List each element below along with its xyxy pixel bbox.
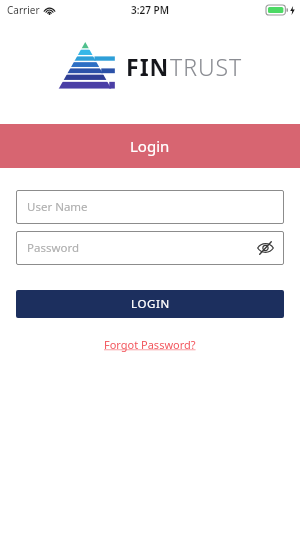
staticText: LOGIN [131,296,170,312]
button[interactable]: Password [16,231,284,265]
staticText: Login [130,136,170,156]
staticText: 3:27 PM [131,3,169,17]
button[interactable]: User Name [16,190,284,224]
staticText: TRUST [170,51,243,82]
button[interactable]: LOGIN [16,290,284,318]
staticText: Carrier [7,3,40,17]
staticText: Forgot Password? [104,337,196,352]
button[interactable]: Show password [255,238,275,258]
button[interactable]: Forgot Password? [98,335,202,354]
staticText: Password [27,240,80,256]
staticText: FIN [126,51,170,82]
staticText: User Name [27,199,88,215]
